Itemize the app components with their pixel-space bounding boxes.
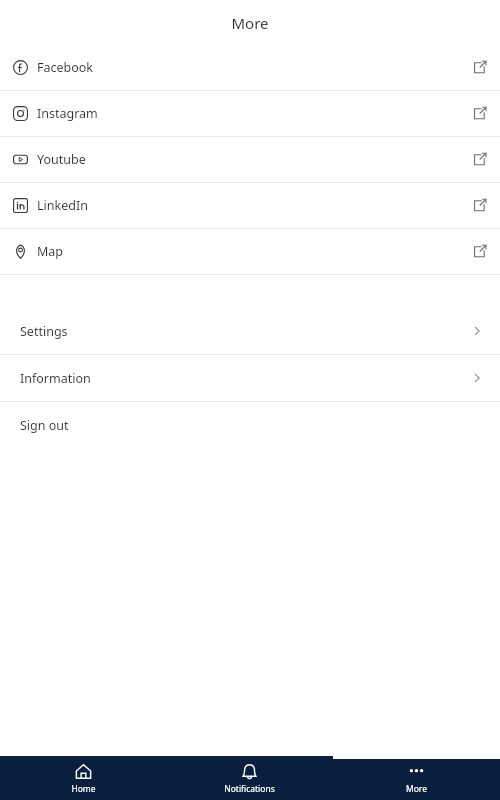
staticText: Map [37, 243, 64, 260]
button[interactable]: Facebook [0, 45, 500, 90]
staticText: More [231, 13, 269, 33]
staticText: More [406, 783, 427, 795]
button[interactable]: Home [0, 756, 166, 800]
staticText: Facebook [37, 59, 94, 76]
staticText: Home [71, 783, 96, 795]
button[interactable]: Sign out [0, 402, 500, 448]
button[interactable]: Youtube [0, 137, 500, 182]
staticText: Instagram [37, 105, 98, 122]
button[interactable]: Map [0, 229, 500, 274]
button[interactable]: Notifications [166, 756, 333, 800]
staticText: LinkedIn [37, 197, 88, 214]
button[interactable]: Instagram [0, 91, 500, 136]
button[interactable]: Settings [0, 308, 500, 354]
staticText: Settings [20, 323, 68, 340]
button[interactable]: Information [0, 355, 500, 401]
button[interactable]: More [333, 756, 500, 800]
staticText: Sign out [20, 417, 69, 434]
button[interactable]: LinkedIn [0, 183, 500, 228]
staticText: Information [20, 370, 91, 387]
staticText: Notifications [224, 783, 275, 795]
staticText: Youtube [37, 151, 86, 168]
